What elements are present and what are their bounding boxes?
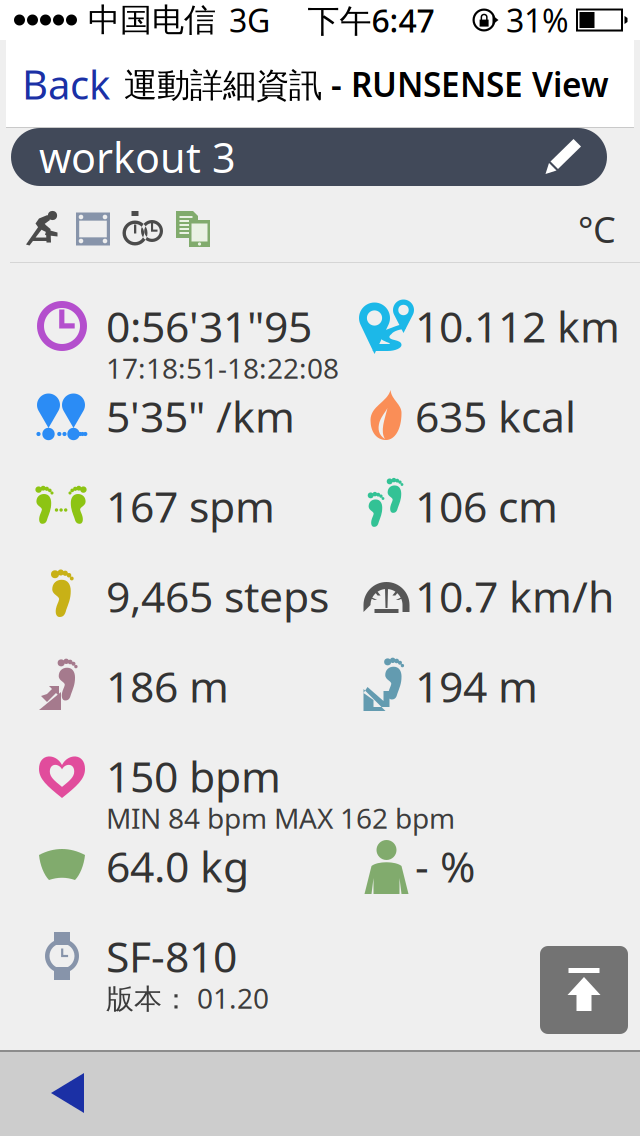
staticText: 3G: [229, 0, 270, 41]
staticText: workout 3: [39, 130, 236, 184]
staticText: 635 kcal: [415, 388, 576, 444]
staticText: 運動詳細資訊 - RUNSENSE View: [124, 62, 609, 106]
staticText: SF-810: [106, 928, 237, 984]
staticText: 167 spm: [106, 478, 275, 534]
staticText: 31%: [506, 0, 569, 41]
staticText: 10.112 km: [415, 298, 620, 354]
staticText: 106 cm: [415, 478, 558, 534]
button[interactable]: Activity type: [18, 209, 68, 249]
staticText: 186 m: [106, 658, 229, 714]
staticText: 9,465 steps: [106, 568, 329, 624]
staticText: 版本： 01.20: [106, 979, 269, 1017]
button[interactable]: Back: [22, 1050, 114, 1136]
button[interactable]: workout 3: [0, 128, 640, 186]
staticText: 下午6:47: [307, 0, 434, 41]
staticText: 5'35" /km: [106, 388, 295, 444]
button[interactable]: Splits: [118, 209, 168, 249]
staticText: Back: [22, 57, 110, 110]
button[interactable]: Scroll to top: [540, 946, 628, 1034]
staticText: 中国电信: [88, 0, 216, 40]
button[interactable]: Laps: [68, 209, 118, 249]
staticText: 10.7 km/h: [415, 568, 614, 624]
staticText: 194 m: [415, 658, 538, 714]
staticText: 64.0 kg: [106, 838, 249, 894]
staticText: °C: [578, 205, 616, 253]
staticText: 150 bpm: [106, 748, 281, 804]
staticText: - %: [415, 838, 475, 894]
button[interactable]: Transfer data: [168, 209, 218, 249]
staticText: 0:56'31"95: [106, 298, 312, 354]
staticText: MIN 84 bpm MAX 162 bpm: [106, 799, 455, 837]
staticText: 17:18:51-18:22:08: [106, 349, 339, 387]
button[interactable]: Back: [6, 40, 114, 128]
